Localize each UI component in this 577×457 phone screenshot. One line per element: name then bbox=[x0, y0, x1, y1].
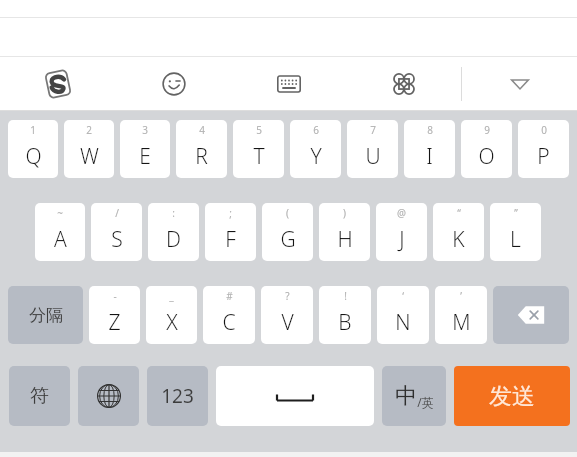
button[interactable]: 6 bbox=[290, 120, 341, 178]
button[interactable]: - bbox=[89, 286, 140, 344]
button[interactable]: 分隔 bbox=[8, 286, 83, 344]
button[interactable]: ) bbox=[319, 203, 370, 261]
staticText: Q bbox=[25, 142, 42, 171]
staticText: Y bbox=[310, 142, 322, 171]
staticText: 0 bbox=[541, 123, 547, 137]
staticText: F bbox=[225, 225, 236, 254]
button[interactable]: 2 bbox=[64, 120, 114, 178]
staticText: R bbox=[195, 142, 208, 171]
staticText: 2 bbox=[86, 123, 92, 137]
staticText: ( bbox=[286, 206, 289, 220]
button[interactable]: ? bbox=[261, 286, 313, 344]
button[interactable]: “ bbox=[433, 203, 484, 261]
staticText: G bbox=[280, 225, 296, 254]
staticText: 中 bbox=[395, 382, 417, 410]
staticText: P bbox=[537, 142, 550, 171]
staticText: E bbox=[139, 142, 151, 171]
staticText: ! bbox=[344, 289, 347, 303]
staticText: ‘ bbox=[402, 289, 404, 303]
button[interactable]: ; bbox=[205, 203, 256, 261]
staticText: 6 bbox=[313, 123, 319, 137]
staticText: 1 bbox=[30, 123, 36, 137]
staticText: J bbox=[399, 225, 405, 254]
button[interactable]: 8 bbox=[404, 120, 455, 178]
staticText: T bbox=[253, 142, 265, 171]
staticText: 分隔 bbox=[29, 305, 63, 326]
button[interactable]: ( bbox=[262, 203, 313, 261]
button[interactable]: 5 bbox=[233, 120, 284, 178]
staticText: L bbox=[510, 225, 521, 254]
staticText: I bbox=[426, 142, 433, 171]
staticText: W bbox=[80, 142, 99, 171]
staticText: 7 bbox=[370, 123, 376, 137]
button[interactable]: Space bbox=[216, 366, 374, 426]
staticText: O bbox=[478, 142, 495, 171]
staticText: _ bbox=[169, 289, 174, 303]
staticText: V bbox=[281, 308, 294, 337]
button[interactable]: Keyboard layout bbox=[231, 57, 346, 110]
button[interactable]: @ bbox=[376, 203, 427, 261]
button[interactable]: 1 bbox=[8, 120, 58, 178]
staticText: K bbox=[452, 225, 465, 254]
button[interactable]: ” bbox=[490, 203, 541, 261]
staticText: 4 bbox=[199, 123, 205, 137]
staticText: 5 bbox=[256, 123, 262, 137]
staticText: 8 bbox=[427, 123, 433, 137]
staticText: ) bbox=[343, 206, 346, 220]
staticText: ” bbox=[514, 206, 518, 220]
staticText: @ bbox=[397, 206, 406, 220]
staticText: C bbox=[222, 308, 236, 337]
staticText: U bbox=[365, 142, 381, 171]
button[interactable]: / bbox=[91, 203, 142, 261]
staticText: # bbox=[226, 289, 233, 303]
button[interactable]: _ bbox=[146, 286, 197, 344]
button[interactable]: Sogou input method bbox=[0, 57, 116, 110]
staticText: D bbox=[166, 225, 181, 254]
button[interactable]: 123 bbox=[147, 366, 208, 426]
button[interactable]: Backspace bbox=[493, 286, 569, 344]
staticText: X bbox=[166, 308, 178, 337]
button[interactable]: Switch input language bbox=[78, 366, 139, 426]
staticText: N bbox=[395, 308, 411, 337]
staticText: 发送 bbox=[489, 382, 535, 411]
staticText: ? bbox=[285, 289, 290, 303]
staticText: ’ bbox=[460, 289, 462, 303]
button[interactable]: ‘ bbox=[377, 286, 429, 344]
staticText: ~ bbox=[57, 206, 63, 220]
button[interactable]: 符 bbox=[9, 366, 70, 426]
button[interactable]: 7 bbox=[347, 120, 398, 178]
staticText: Z bbox=[108, 308, 121, 337]
button[interactable]: # bbox=[203, 286, 255, 344]
staticText: ; bbox=[229, 206, 232, 220]
button[interactable]: More bbox=[346, 57, 461, 110]
button[interactable]: ~ bbox=[35, 203, 85, 261]
button[interactable]: ! bbox=[319, 286, 371, 344]
staticText: A bbox=[54, 225, 67, 254]
button[interactable]: 4 bbox=[176, 120, 227, 178]
staticText: / bbox=[115, 206, 119, 220]
staticText: 9 bbox=[484, 123, 490, 137]
staticText: - bbox=[113, 289, 117, 303]
staticText: B bbox=[338, 308, 352, 337]
button[interactable]: : bbox=[148, 203, 199, 261]
staticText: : bbox=[172, 206, 175, 220]
button[interactable]: 9 bbox=[461, 120, 512, 178]
button[interactable]: Hide keyboard bbox=[462, 57, 577, 110]
staticText: M bbox=[452, 308, 471, 337]
staticText: 3 bbox=[142, 123, 148, 137]
button[interactable]: 0 bbox=[518, 120, 569, 178]
button[interactable]: 发送 bbox=[454, 366, 570, 426]
staticText: /英 bbox=[417, 394, 434, 410]
button[interactable]: Emoji bbox=[116, 57, 231, 110]
staticText: 123 bbox=[161, 383, 194, 409]
staticText: 符 bbox=[30, 384, 49, 408]
staticText: S bbox=[111, 225, 123, 254]
button[interactable]: 中 bbox=[382, 366, 446, 426]
button[interactable]: ’ bbox=[435, 286, 487, 344]
button[interactable]: 3 bbox=[120, 120, 170, 178]
staticText: “ bbox=[457, 206, 461, 220]
staticText: H bbox=[337, 225, 353, 254]
